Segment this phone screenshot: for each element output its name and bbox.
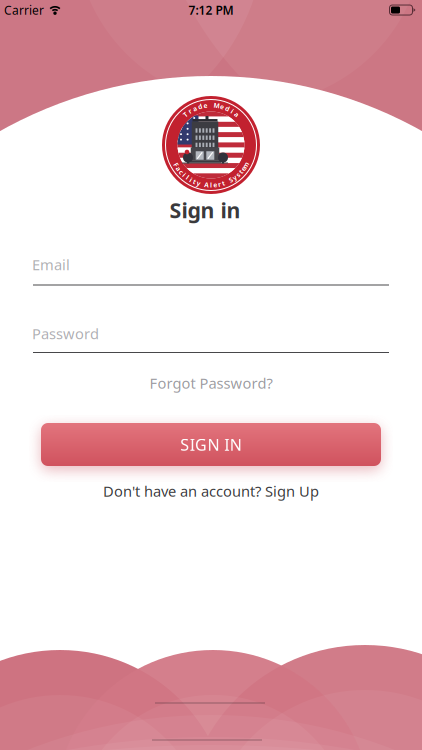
staticText: m [242,161,249,169]
staticText: a [235,110,239,119]
staticText: d [225,104,229,113]
staticText: s [236,170,239,179]
staticText: e [213,180,217,189]
staticText: l [210,181,212,189]
staticText: Sign in [169,196,240,224]
staticText: Password [32,324,99,343]
button[interactable]: SIGN IN [41,423,381,466]
staticText: F [174,161,178,169]
staticText: y [232,173,236,182]
staticText: Don't have an account? Sign Up [103,481,319,501]
staticText: c [180,167,183,176]
staticText: i [183,170,185,179]
staticText: d [198,102,202,111]
staticText: Forgot Password? [149,373,272,393]
staticText: l [186,173,188,182]
staticText: 7:12 PM [188,2,233,18]
button[interactable]: Email [0,253,422,297]
staticText: r [218,180,221,189]
staticText [202,180,204,189]
staticText: S [229,175,233,184]
button[interactable]: Password [0,321,422,365]
staticText: i [231,107,233,116]
staticText: t [193,177,196,186]
button[interactable]: Forgot Password? [149,373,272,393]
staticText: t [239,167,242,176]
staticText: i [190,175,192,184]
staticText: T [183,110,187,119]
staticText: e [220,102,224,111]
staticText: a [177,164,181,173]
staticText: e [241,164,245,173]
button[interactable]: Don't have an account? Sign Up [103,481,319,501]
staticText: M [214,101,220,110]
staticText: e [203,101,207,110]
staticText: A [204,180,209,189]
staticText: SIGN IN [180,434,242,455]
staticText: t [222,179,225,187]
staticText: r [188,107,191,116]
staticText: y [197,179,201,187]
staticText: Carrier [4,2,44,18]
staticText: Email [32,255,70,274]
staticText: a [193,104,197,113]
